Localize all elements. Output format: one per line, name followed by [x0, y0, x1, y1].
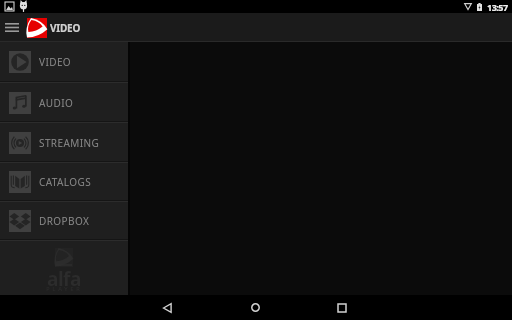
- button[interactable]: STREAMING: [0, 123, 128, 162]
- button[interactable]: Open navigation drawer: [0, 13, 24, 42]
- staticText: alfa: [47, 266, 81, 292]
- button[interactable]: VIDEO: [0, 42, 128, 82]
- staticText: VIDEO: [50, 21, 81, 35]
- staticText: AUDIO: [39, 96, 74, 110]
- button[interactable]: Back: [145, 295, 189, 320]
- staticText: STREAMING: [39, 136, 100, 150]
- button[interactable]: Home: [233, 295, 277, 320]
- staticText: 13:57: [487, 1, 508, 13]
- button[interactable]: Recent apps: [320, 295, 364, 320]
- button[interactable]: AUDIO: [0, 83, 128, 122]
- staticText: DROPBOX: [39, 214, 90, 228]
- staticText: CATALOGS: [39, 175, 92, 189]
- button[interactable]: DROPBOX: [0, 202, 128, 240]
- button[interactable]: CATALOGS: [0, 163, 128, 201]
- staticText: VIDEO: [39, 55, 72, 69]
- staticText: PLAYER: [46, 285, 83, 293]
